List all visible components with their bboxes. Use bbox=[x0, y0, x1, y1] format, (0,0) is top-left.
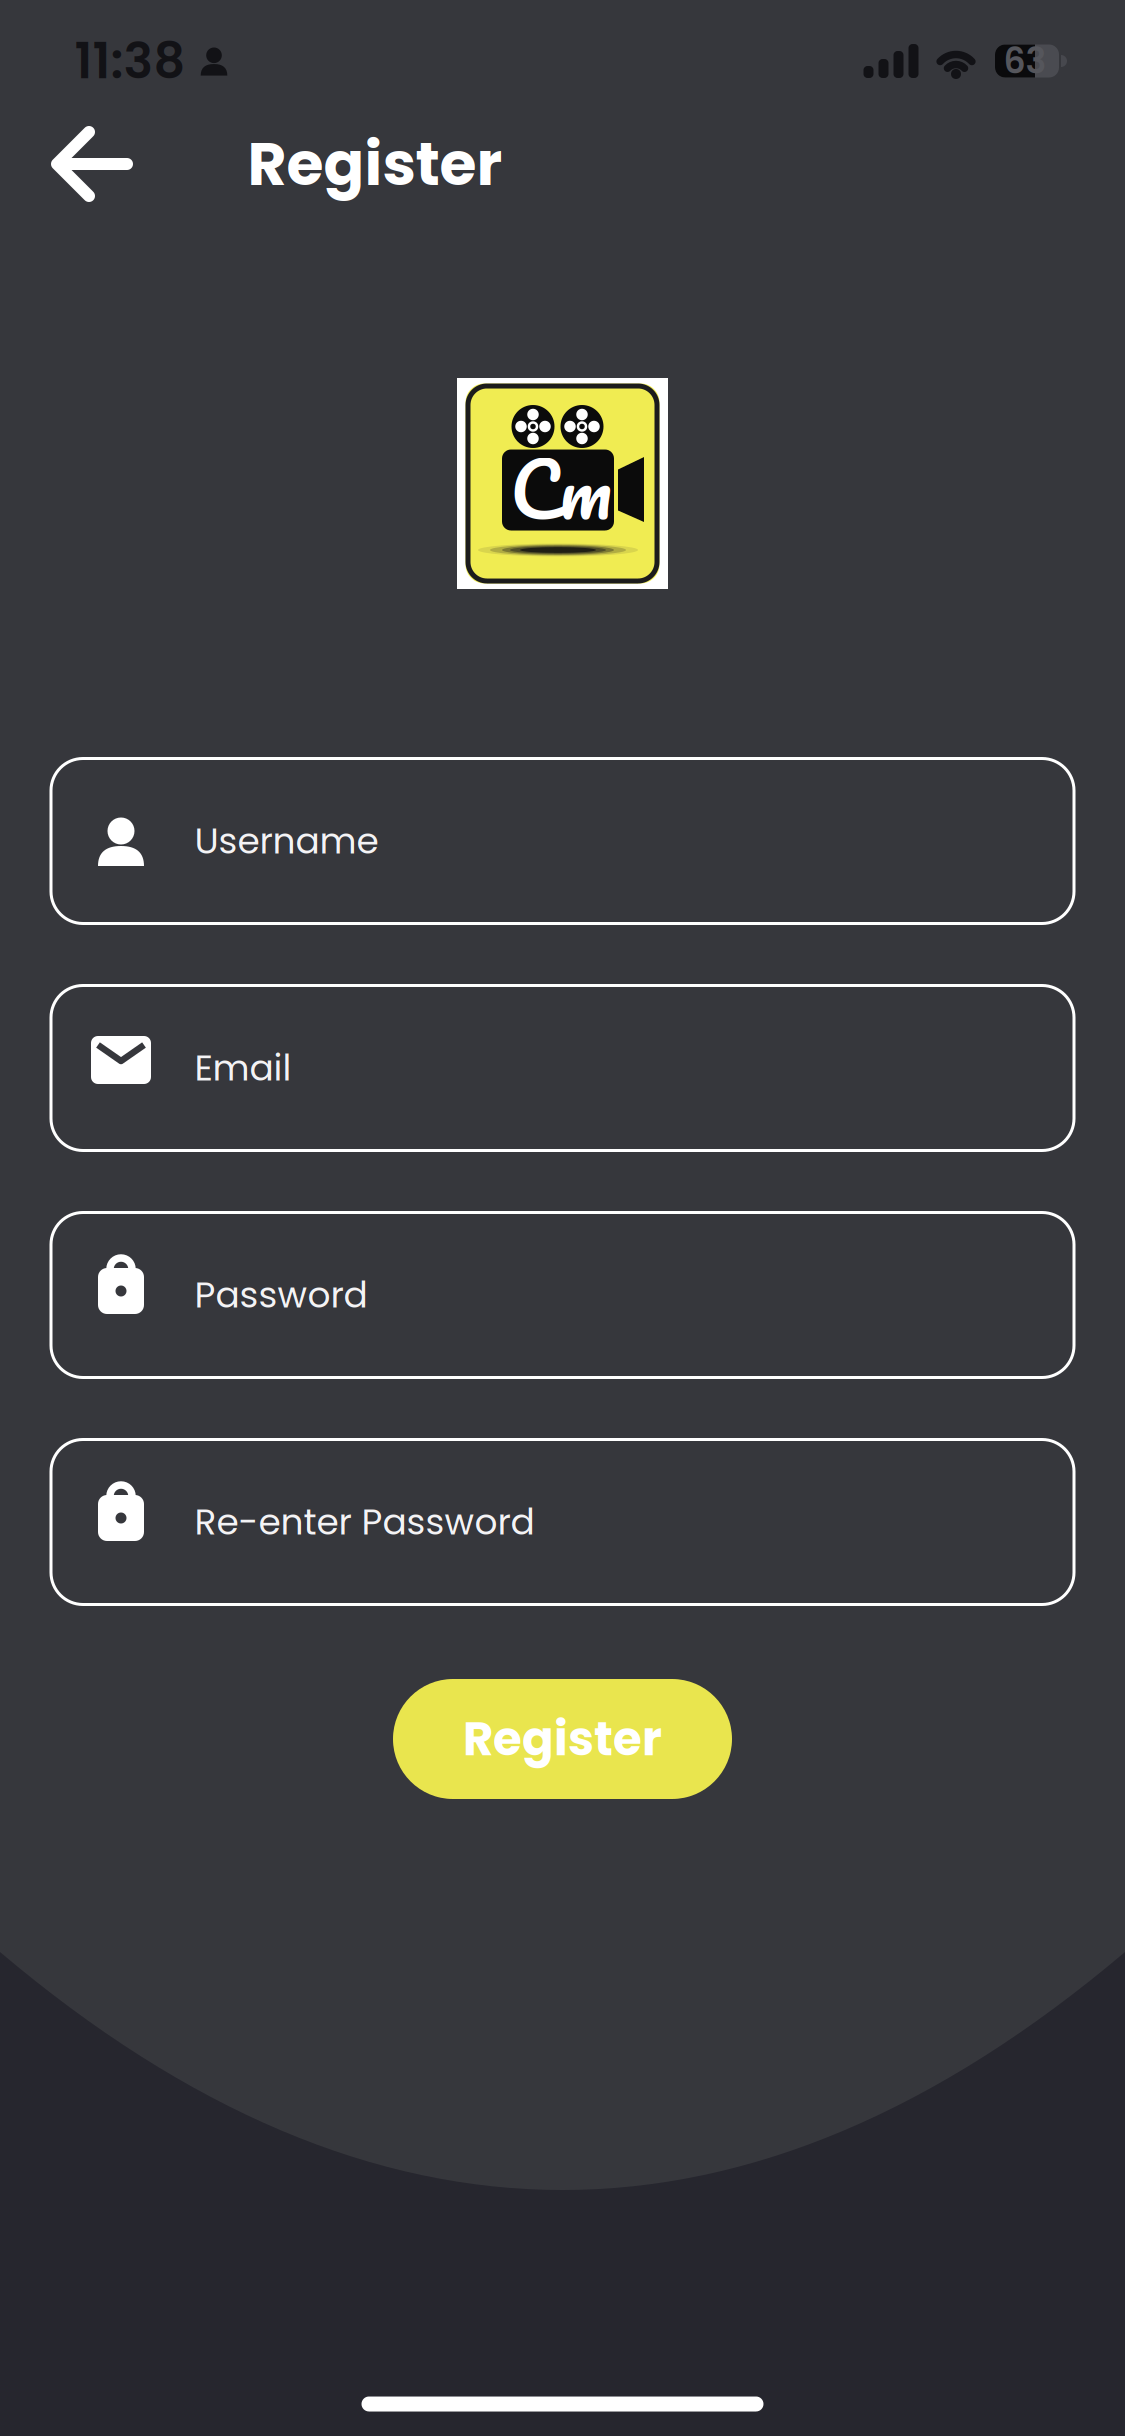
staticText: Username bbox=[194, 816, 378, 866]
staticText: Register bbox=[463, 1706, 662, 1772]
button[interactable]: Re-enter Password bbox=[49, 1438, 1075, 1606]
staticText: Password bbox=[194, 1270, 367, 1320]
button[interactable]: Password bbox=[49, 1211, 1075, 1379]
staticText: Register bbox=[247, 122, 502, 206]
staticText: 63 bbox=[1003, 37, 1046, 85]
button[interactable]: Username bbox=[49, 757, 1075, 925]
button[interactable]: Email bbox=[49, 984, 1075, 1152]
button[interactable]: Back bbox=[49, 128, 135, 200]
staticText: Re-enter Password bbox=[194, 1497, 534, 1547]
staticText: 11:38 bbox=[74, 26, 185, 96]
staticText: Email bbox=[194, 1043, 291, 1093]
staticText: Cm bbox=[510, 426, 612, 552]
button[interactable]: Register bbox=[393, 1679, 732, 1799]
